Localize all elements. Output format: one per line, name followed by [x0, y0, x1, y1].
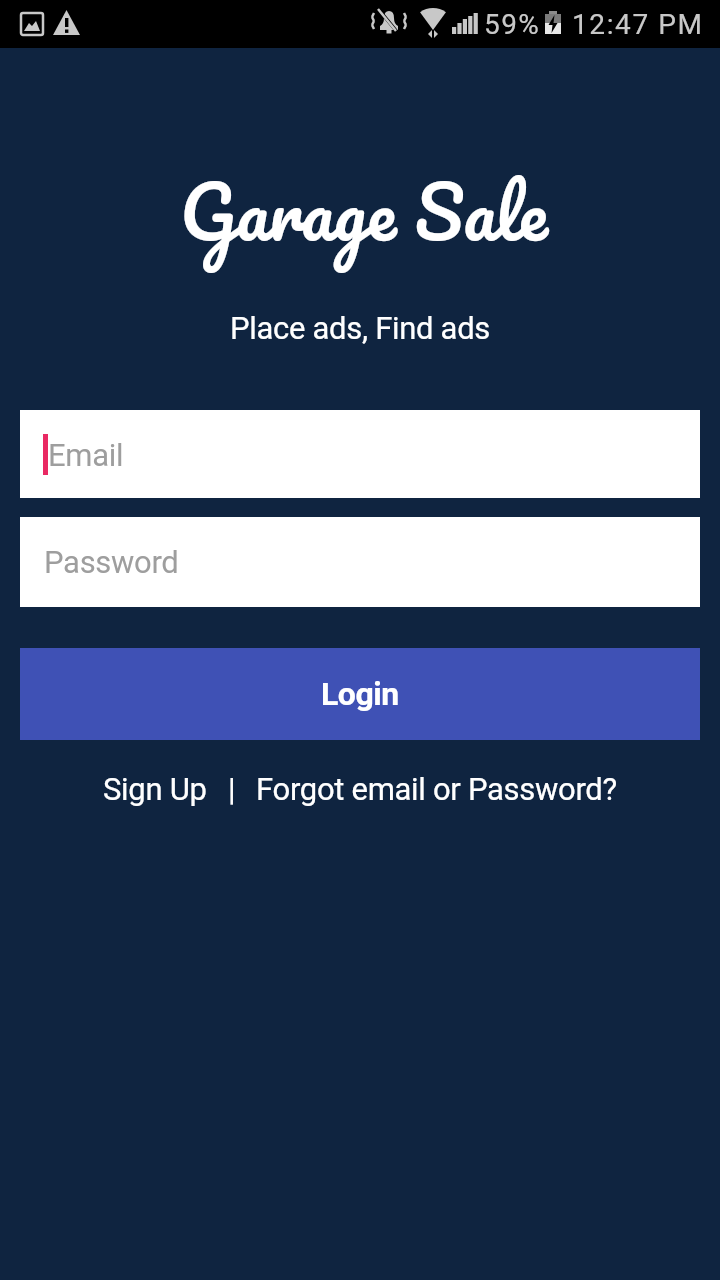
staticText: Password — [44, 544, 179, 580]
staticText: 12:47 PM — [572, 8, 704, 41]
button[interactable]: Forgot email or Password? — [256, 771, 617, 807]
staticText: | — [228, 771, 236, 807]
staticText: Email — [48, 437, 124, 473]
button[interactable]: Password — [20, 517, 700, 607]
staticText: Place ads, Find ads — [230, 310, 491, 346]
button[interactable]: Email — [20, 410, 700, 498]
staticText: Garage Sale — [180, 150, 548, 273]
button[interactable]: Login — [20, 648, 700, 740]
staticText: Login — [321, 675, 399, 713]
staticText: 59% — [484, 8, 541, 41]
button[interactable]: Sign Up — [103, 771, 207, 807]
